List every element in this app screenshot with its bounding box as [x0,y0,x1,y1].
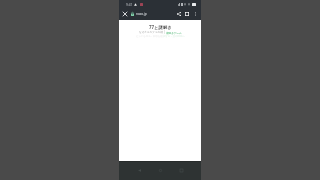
staticText: なぞともカフェの謎 | [139,30,166,34]
staticText: 謎解きゲーム [166,31,182,34]
staticText: ヒントを見る・解答を確 [136,35,163,38]
staticText: 77と謎解き [149,24,172,30]
staticText: 9:41 [126,3,133,7]
staticText: 認する・次の問題へ [163,35,185,38]
staticText: nazo.jp [136,12,147,16]
button[interactable]: Close [121,10,129,18]
button[interactable]: More options [191,10,199,18]
button[interactable]: Share [175,10,183,18]
button[interactable]: Save page [183,10,191,18]
